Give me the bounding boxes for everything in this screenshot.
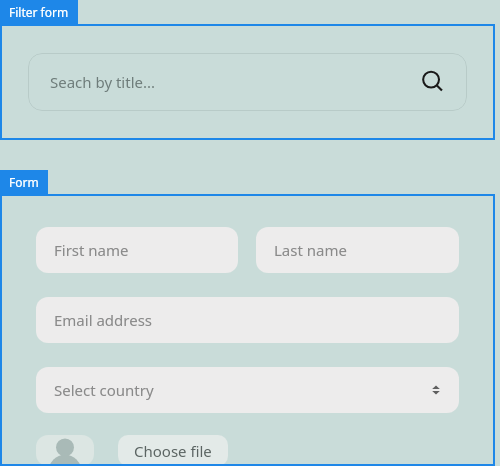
button[interactable]: Select country	[36, 367, 459, 413]
staticText: Seach by title...	[50, 72, 156, 92]
staticText: Filter form	[9, 4, 69, 20]
other: Search	[421, 70, 445, 94]
staticText: Select country	[54, 380, 154, 400]
button[interactable]: Form	[0, 170, 48, 194]
staticText: Form	[9, 174, 39, 190]
button[interactable]: Email address	[36, 297, 459, 343]
staticText: Last name	[274, 240, 347, 260]
staticText: First name	[54, 240, 129, 260]
button[interactable]: First name	[36, 227, 238, 273]
staticText: Choose file	[134, 441, 212, 461]
button[interactable]: Filter form	[0, 0, 78, 24]
button[interactable]: Choose file	[118, 435, 228, 466]
button[interactable]: Last name	[256, 227, 459, 273]
staticText: Email address	[54, 310, 153, 330]
button[interactable]: Profile photo	[36, 435, 94, 466]
button[interactable]: Seach by title...	[28, 53, 467, 111]
